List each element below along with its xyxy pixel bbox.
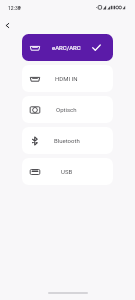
staticText: HDMI IN (55, 75, 78, 82)
button[interactable]: Bluetooth (22, 127, 113, 154)
staticText: Optisch (56, 106, 77, 113)
staticText: Bluetooth (54, 137, 80, 144)
button[interactable]: Back (0, 16, 16, 34)
button[interactable]: eARC/ARC (22, 34, 113, 61)
staticText: eARC/ARC (52, 44, 81, 51)
button[interactable]: USB (22, 158, 113, 185)
staticText: USB (61, 168, 73, 175)
button[interactable]: Optisch (22, 96, 113, 123)
button[interactable]: HDMI IN (22, 65, 113, 92)
staticText: 12:38 (8, 5, 21, 11)
